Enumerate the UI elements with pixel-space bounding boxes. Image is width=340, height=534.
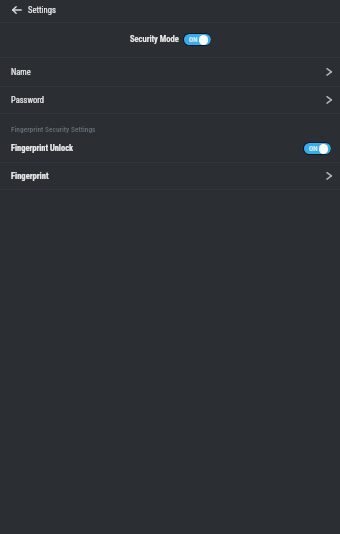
staticText: Security Mode <box>130 34 179 44</box>
button[interactable]: Fingerprint Unlock <box>0 137 340 162</box>
button[interactable]: Toggle on <box>183 33 211 46</box>
button[interactable]: Password <box>0 87 340 113</box>
button[interactable]: Security Mode <box>130 33 211 47</box>
staticText: Fingerprint <box>11 171 49 181</box>
button[interactable]: Fingerprint <box>0 163 340 189</box>
staticText: ON <box>309 145 318 153</box>
button[interactable]: Name <box>0 58 340 86</box>
staticText: Fingerprint Unlock <box>11 143 74 153</box>
button[interactable]: Toggle on <box>303 142 331 155</box>
staticText: Name <box>11 67 31 77</box>
button[interactable]: Back <box>7 0 27 19</box>
staticText: Settings <box>28 5 56 15</box>
staticText: Password <box>11 95 45 105</box>
staticText: Fingerprint Security Settings <box>11 125 96 134</box>
staticText: ON <box>189 36 198 44</box>
